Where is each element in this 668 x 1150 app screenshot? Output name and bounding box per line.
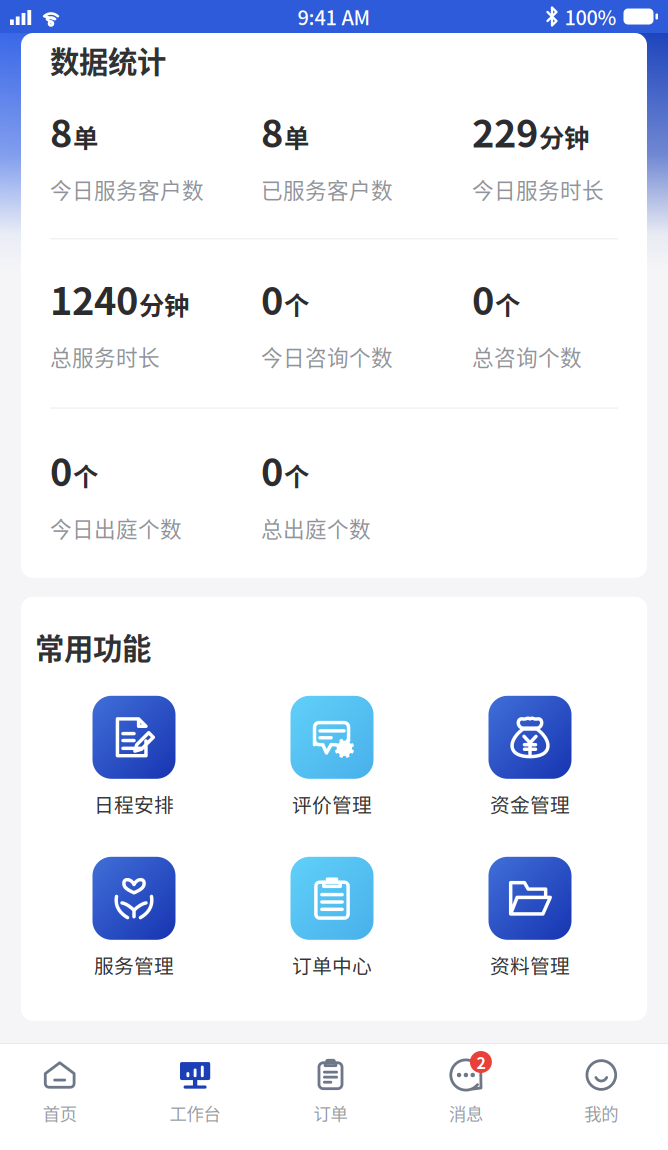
staticText: 单 bbox=[73, 118, 98, 155]
staticText: 8 bbox=[261, 103, 283, 158]
staticText: 订单中心 bbox=[292, 950, 372, 979]
staticText: 2 bbox=[476, 1050, 485, 1074]
staticText: 已服务客户数 bbox=[261, 173, 393, 205]
staticText: 数据统计 bbox=[50, 39, 166, 81]
button[interactable]: 我的 bbox=[534, 1044, 668, 1150]
staticText: 资金管理 bbox=[490, 789, 570, 818]
staticText: 0 bbox=[472, 271, 494, 326]
staticText: 总出庭个数 bbox=[261, 512, 371, 543]
staticText: 分钟 bbox=[539, 118, 589, 155]
button[interactable]: 资金管理 bbox=[431, 696, 629, 816]
staticText: 个 bbox=[284, 286, 309, 322]
staticText: 日程安排 bbox=[94, 789, 174, 818]
staticText: 分钟 bbox=[139, 286, 189, 322]
staticText: 个 bbox=[495, 286, 520, 322]
button[interactable]: 订单中心 bbox=[233, 857, 431, 977]
button[interactable]: 服务管理 bbox=[35, 857, 233, 977]
button[interactable]: 首页 bbox=[0, 1044, 127, 1150]
staticText: 服务管理 bbox=[94, 950, 174, 979]
staticText: 0 bbox=[261, 442, 283, 497]
staticText: 个 bbox=[73, 457, 98, 494]
button[interactable]: 订单 bbox=[263, 1044, 398, 1150]
staticText: 订单 bbox=[313, 1100, 347, 1126]
staticText: 今日咨询个数 bbox=[261, 341, 393, 372]
staticText: 首页 bbox=[43, 1100, 77, 1126]
staticText: 工作台 bbox=[170, 1100, 221, 1126]
staticText: 1240 bbox=[50, 271, 138, 326]
staticText: 资料管理 bbox=[490, 950, 570, 979]
staticText: 9:41 AM bbox=[297, 2, 370, 31]
staticText: 8 bbox=[50, 103, 72, 158]
staticText: 总咨询个数 bbox=[472, 341, 582, 372]
staticText: 个 bbox=[284, 457, 309, 494]
staticText: 今日服务时长 bbox=[472, 173, 604, 205]
button[interactable]: 日程安排 bbox=[35, 696, 233, 816]
staticText: 0 bbox=[50, 442, 72, 497]
button[interactable]: 评价管理 bbox=[233, 696, 431, 816]
button[interactable]: 工作台 bbox=[127, 1044, 263, 1150]
staticText: 评价管理 bbox=[292, 789, 372, 818]
staticText: 今日出庭个数 bbox=[50, 512, 182, 543]
staticText: 今日服务客户数 bbox=[50, 173, 204, 205]
staticText: 0 bbox=[261, 271, 283, 326]
staticText: 单 bbox=[284, 118, 309, 155]
staticText: 消息 bbox=[449, 1100, 483, 1126]
staticText: 100% bbox=[564, 2, 616, 31]
button[interactable]: 2 bbox=[398, 1044, 534, 1150]
staticText: 常用功能 bbox=[35, 626, 151, 668]
staticText: 229 bbox=[472, 103, 538, 158]
staticText: 总服务时长 bbox=[50, 341, 160, 372]
staticText: 我的 bbox=[584, 1100, 618, 1126]
button[interactable]: 资料管理 bbox=[431, 857, 629, 977]
